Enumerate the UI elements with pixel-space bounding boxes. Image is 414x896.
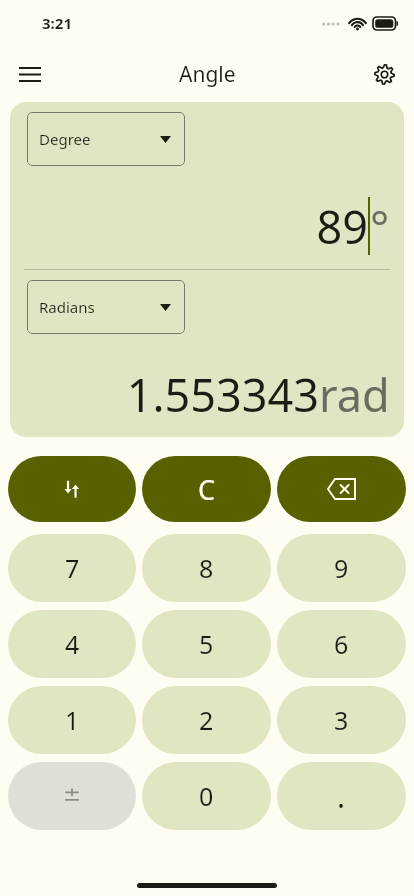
staticText: Degree	[39, 129, 91, 149]
staticText: 3	[334, 703, 349, 737]
staticText: 2	[199, 703, 214, 737]
button[interactable]: Radians	[27, 280, 185, 334]
button[interactable]: Settings	[360, 50, 408, 98]
button[interactable]: Backspace	[277, 456, 406, 522]
staticText: °	[370, 196, 390, 257]
staticText: C	[198, 471, 216, 508]
button[interactable]: Swap units	[8, 456, 136, 522]
staticText: 9	[334, 551, 349, 585]
staticText: Angle	[179, 60, 236, 89]
button[interactable]: 9	[277, 534, 406, 602]
button[interactable]: Plus minus	[8, 762, 136, 830]
button[interactable]: 7	[8, 534, 136, 602]
staticText: 7	[65, 551, 80, 585]
staticText: .	[337, 776, 346, 817]
staticText: 1.553343	[126, 364, 319, 425]
staticText: 89	[316, 196, 368, 257]
staticText: 6	[334, 627, 349, 661]
button[interactable]: 8	[142, 534, 271, 602]
staticText: 8	[199, 551, 214, 585]
button[interactable]: 3	[277, 686, 406, 754]
button[interactable]: 4	[8, 610, 136, 678]
button[interactable]: .	[277, 762, 406, 830]
button[interactable]: C	[142, 456, 271, 522]
staticText: 1	[65, 703, 80, 737]
staticText: 0	[199, 779, 214, 813]
button[interactable]: 2	[142, 686, 271, 754]
staticText: rad	[319, 364, 390, 425]
button[interactable]: Menu	[6, 50, 54, 98]
button[interactable]: 6	[277, 610, 406, 678]
staticText: Radians	[39, 297, 95, 317]
button[interactable]: 1	[8, 686, 136, 754]
staticText: 5	[199, 627, 214, 661]
button[interactable]: 5	[142, 610, 271, 678]
staticText: 4	[65, 627, 80, 661]
button[interactable]: Degree	[27, 112, 185, 166]
button[interactable]: 0	[142, 762, 271, 830]
staticText: 3:21	[42, 13, 72, 33]
